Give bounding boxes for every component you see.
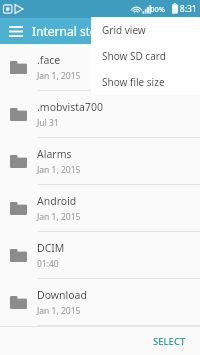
staticText: .mobvista700 [37, 100, 104, 114]
staticText: Show SD card [102, 49, 166, 63]
button[interactable]: Show file size [91, 69, 200, 95]
button[interactable]: DCIM [0, 232, 200, 279]
staticText: Jan 1, 2015 [37, 70, 81, 82]
staticText: Alarms [37, 147, 72, 161]
staticText: Download [37, 288, 87, 302]
button[interactable]: Download [0, 279, 200, 326]
staticText: 100% [146, 4, 166, 14]
staticText: Jul 31 [37, 117, 59, 129]
button[interactable]: Open navigation drawer [5, 20, 27, 42]
button[interactable]: SELECT [139, 329, 200, 354]
staticText: .face [37, 53, 61, 67]
staticText: Show file size [102, 75, 165, 89]
button[interactable]: Grid view [91, 17, 200, 43]
button[interactable]: Android [0, 185, 200, 232]
staticText: Internal storage [32, 23, 123, 39]
button[interactable]: .mobvista700 [0, 91, 200, 138]
button[interactable]: Show SD card [91, 43, 200, 69]
staticText: SELECT [153, 335, 186, 348]
staticText: DCIM [37, 241, 65, 255]
staticText: 18:31 [175, 3, 197, 15]
staticText: 01:40 [37, 258, 59, 270]
staticText: Jan 1, 2015 [37, 164, 81, 176]
staticText: Jan 1, 2015 [37, 305, 81, 317]
staticText: Grid view [102, 23, 146, 37]
button[interactable]: Alarms [0, 138, 200, 185]
staticText: Jan 1, 2015 [37, 211, 81, 223]
staticText: Android [37, 194, 77, 208]
button[interactable]: .face [0, 44, 200, 91]
